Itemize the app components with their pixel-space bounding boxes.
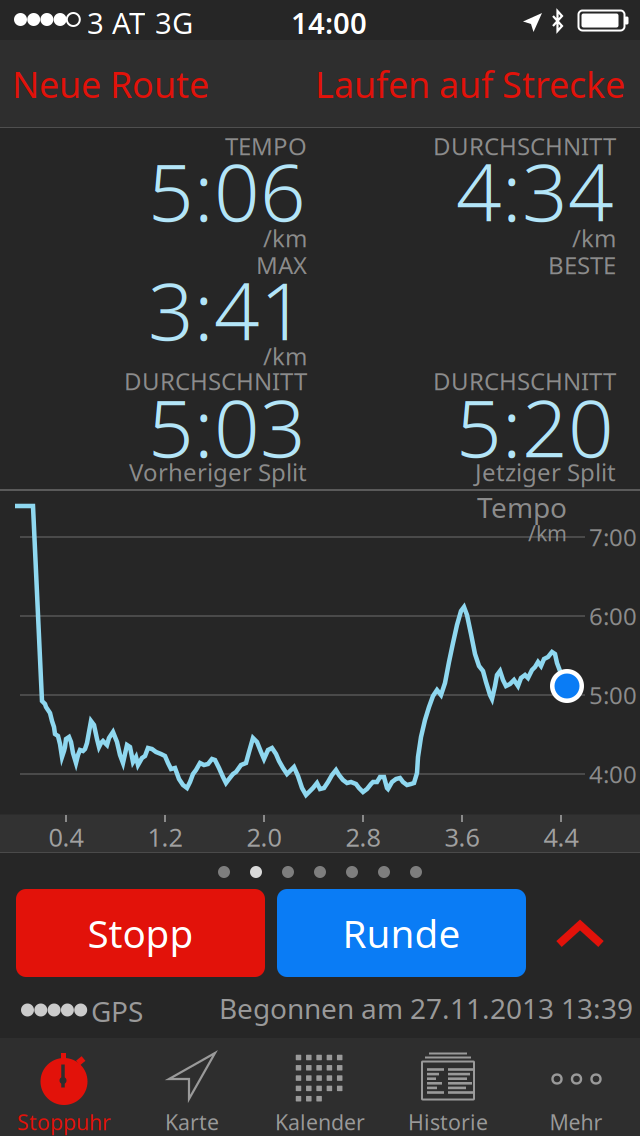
button[interactable]: Historie: [384, 1038, 512, 1136]
staticText: /km: [572, 222, 616, 254]
staticText: 14:00: [291, 3, 367, 42]
button[interactable]: Karte: [128, 1038, 256, 1136]
staticText: 1.2: [147, 820, 182, 854]
staticText: 2.0: [246, 820, 281, 854]
staticText: /km: [528, 519, 567, 547]
button[interactable]: Laufen auf Strecke: [295, 47, 625, 121]
staticText: Stoppuhr: [17, 1108, 111, 1136]
staticText: DURCHSCHNITT: [124, 365, 307, 397]
staticText: Kalender: [275, 1108, 365, 1136]
staticText: 2.8: [345, 820, 380, 854]
button[interactable]: Mehr: [512, 1038, 640, 1136]
staticText: /km: [263, 340, 307, 372]
staticText: BESTE: [548, 249, 616, 281]
staticText: 5:20: [456, 373, 614, 479]
staticText: 5:06: [148, 137, 306, 243]
button[interactable]: Stoppuhr: [0, 1038, 128, 1136]
staticText: Begonnen am 27.11.2013 13:39: [219, 990, 633, 1027]
staticText: Tempo: [477, 489, 567, 526]
staticText: Runde: [342, 907, 460, 959]
staticText: Laufen auf Strecke: [315, 60, 625, 108]
staticText: GPS: [91, 993, 143, 1030]
staticText: Karte: [165, 1108, 219, 1136]
button[interactable]: Kalender: [256, 1038, 384, 1136]
button[interactable]: Neue Route: [12, 47, 222, 121]
staticText: 6:00: [589, 600, 637, 632]
staticText: 4.4: [543, 820, 578, 854]
staticText: 4:00: [589, 758, 637, 790]
staticText: 5:03: [148, 373, 306, 479]
staticText: Mehr: [549, 1108, 602, 1136]
staticText: 3 AT: [87, 3, 145, 42]
staticText: 3G: [155, 3, 193, 42]
staticText: Vorheriger Split: [129, 456, 307, 488]
staticText: TEMPO: [225, 130, 307, 162]
staticText: Jetziger Split: [475, 456, 616, 488]
button[interactable]: Stopp: [16, 889, 265, 977]
staticText: DURCHSCHNITT: [433, 365, 616, 397]
staticText: Historie: [408, 1108, 488, 1136]
button[interactable]: Runde: [277, 889, 526, 977]
staticText: DURCHSCHNITT: [433, 130, 616, 162]
staticText: MAX: [256, 249, 307, 281]
staticText: Stopp: [87, 907, 193, 959]
button[interactable]: Weitere Optionen: [535, 889, 625, 977]
staticText: /km: [263, 222, 307, 254]
staticText: 4:34: [456, 137, 614, 243]
staticText: 5:00: [589, 679, 637, 711]
staticText: Neue Route: [12, 60, 209, 108]
staticText: 7:00: [589, 521, 637, 553]
staticText: 3:41: [148, 256, 306, 362]
staticText: 0.4: [48, 820, 83, 854]
staticText: 3.6: [444, 820, 479, 854]
